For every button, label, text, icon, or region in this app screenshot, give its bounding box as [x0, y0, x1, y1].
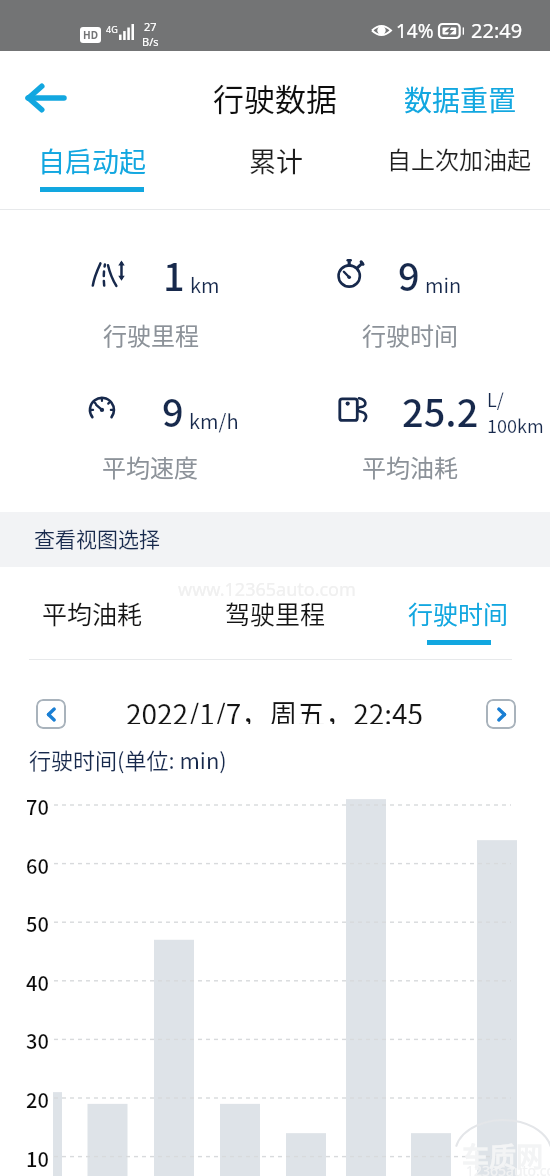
button[interactable]: 数据重置 — [404, 79, 517, 120]
staticText: 车质网 — [462, 1136, 543, 1175]
staticText: 数据重置 — [404, 79, 517, 120]
staticText: 行驶时间 — [408, 595, 509, 631]
button[interactable]: 自上次加油起 — [367, 130, 550, 209]
staticText: www.12365auto.com — [178, 577, 356, 602]
staticText: 22:49 — [471, 17, 523, 44]
button[interactable]: 累计 — [184, 130, 367, 209]
staticText: 25.2 — [402, 383, 479, 438]
button[interactable]: Previous day — [36, 699, 66, 729]
button[interactable]: Back — [14, 67, 76, 129]
staticText: 20 — [26, 1085, 49, 1114]
staticText: 27 — [144, 19, 157, 34]
staticText: 行驶时间 — [362, 317, 458, 352]
button[interactable]: 平均油耗 — [0, 590, 184, 655]
staticText: 平均油耗 — [362, 449, 458, 484]
staticText: km — [190, 270, 220, 299]
staticText: 9 — [162, 383, 184, 438]
staticText: 行驶数据 — [213, 75, 337, 120]
staticText: L/ — [487, 386, 504, 412]
staticText: 30 — [26, 1026, 49, 1055]
staticText: 100km — [487, 412, 544, 438]
button[interactable]: Next day — [486, 699, 516, 729]
staticText: 60 — [26, 851, 49, 880]
staticText: 行驶时间(单位: min) — [29, 743, 227, 775]
staticText: 累计 — [249, 141, 303, 180]
staticText: 查看视图选择 — [34, 523, 160, 553]
staticText: 50 — [26, 909, 49, 938]
staticText: 70 — [26, 792, 49, 821]
button[interactable]: 行驶时间 — [367, 590, 550, 655]
staticText: 9 — [398, 247, 420, 302]
staticText: 4G — [106, 23, 118, 35]
staticText: 驾驶里程 — [225, 595, 326, 631]
staticText: km/h — [189, 406, 239, 435]
staticText: B/s — [142, 34, 159, 49]
staticText: 自启动起 — [38, 141, 146, 180]
staticText: HD — [83, 28, 98, 42]
staticText: 40 — [26, 968, 49, 997]
staticText: 14% — [396, 18, 434, 44]
staticText: 行驶里程 — [103, 317, 199, 352]
button[interactable]: 自启动起 — [0, 130, 184, 209]
staticText: 平均速度 — [102, 449, 198, 484]
staticText: 平均油耗 — [42, 595, 143, 631]
staticText: min — [425, 270, 462, 299]
staticText: 12365auto.com — [466, 1161, 550, 1176]
staticText: 1 — [163, 247, 185, 302]
button[interactable]: 驾驶里程 — [184, 590, 367, 655]
staticText: 2022/1/7，周五，22:45 — [126, 693, 424, 724]
staticText: 10 — [26, 1144, 49, 1173]
staticText: 自上次加油起 — [387, 141, 531, 176]
